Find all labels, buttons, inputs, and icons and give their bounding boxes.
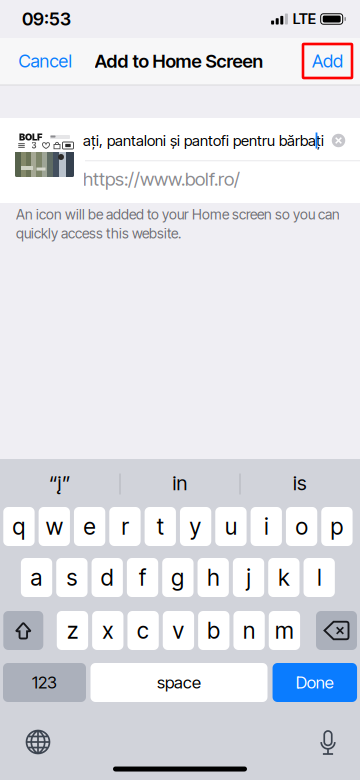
staticText: ați, pantaloni și pantofi pentru bărbați [83,131,324,150]
button[interactable]: Dictate [302,723,354,763]
staticText: o [296,513,308,540]
button[interactable]: “į” [0,460,120,506]
staticText: p [330,513,343,540]
button[interactable]: n [233,611,265,650]
button[interactable]: Cancel [8,44,82,78]
button[interactable]: Done [273,663,357,702]
staticText: b [207,617,220,644]
staticText: 09:53 [22,8,71,30]
staticText: m [275,617,294,644]
button[interactable]: k [268,558,299,597]
staticText: Done [296,672,334,693]
button[interactable]: Delete [316,611,357,650]
staticText: Add [312,50,343,72]
staticText: d [101,564,114,591]
staticText: s [66,564,77,591]
staticText: is [293,471,307,495]
button[interactable]: o [286,507,317,546]
staticText: h [207,564,219,591]
button[interactable]: q [3,507,35,546]
staticText: 3 [31,141,36,150]
staticText: v [172,617,184,644]
staticText: t [157,513,164,540]
staticText: w [46,513,63,540]
staticText: in [172,471,187,495]
staticText: BOLF [19,131,42,143]
button[interactable]: l [303,558,335,597]
staticText: An icon will be added to your Home scree… [16,206,340,223]
staticText: z [67,617,78,644]
button[interactable]: j [233,558,264,597]
button[interactable]: Clear text [323,125,353,155]
button[interactable]: Switch keyboard [12,722,64,762]
staticText: e [84,513,96,540]
button[interactable]: e [74,507,105,546]
button[interactable]: Shift [3,611,43,650]
button[interactable]: p [321,507,353,546]
staticText: u [225,513,237,540]
button[interactable]: g [162,558,193,597]
staticText: l [317,564,321,591]
staticText: n [243,617,255,644]
button[interactable]: z [57,611,88,650]
button[interactable]: 123 [3,663,86,702]
staticText: f [139,564,146,591]
staticText: q [12,513,25,540]
staticText: x [102,617,113,644]
button[interactable]: w [39,507,70,546]
staticText: 123 [32,672,57,693]
button[interactable]: c [127,611,159,650]
button[interactable]: u [215,507,247,546]
button[interactable]: r [109,507,141,546]
staticText: y [190,513,202,540]
button[interactable]: d [92,558,123,597]
button[interactable]: is [240,460,360,506]
button[interactable]: b [198,611,229,650]
staticText: quickly access this website. [16,225,181,242]
button[interactable]: s [56,558,87,597]
staticText: k [278,564,289,591]
button[interactable]: v [163,611,194,650]
staticText: c [137,617,149,644]
staticText: https://www.bolf.ro/ [83,168,240,190]
staticText: LTE [293,10,316,28]
button[interactable]: m [269,611,300,650]
button[interactable]: y [180,507,211,546]
button[interactable]: f [127,558,158,597]
staticText: “į” [49,471,71,495]
staticText: space [157,672,201,693]
button[interactable]: t [145,507,176,546]
staticText: a [30,564,42,591]
button[interactable]: a [21,558,52,597]
staticText: r [121,513,128,540]
button[interactable]: Add [303,44,352,78]
button[interactable]: x [92,611,123,650]
staticText: g [171,564,184,591]
button[interactable]: space [90,663,267,702]
button[interactable]: in [120,460,240,506]
button[interactable]: h [197,558,229,597]
staticText: i [264,513,268,540]
staticText: Add to Home Screen [94,50,263,72]
staticText: j [246,564,250,591]
button[interactable]: i [251,507,282,546]
staticText: Cancel [18,50,71,72]
